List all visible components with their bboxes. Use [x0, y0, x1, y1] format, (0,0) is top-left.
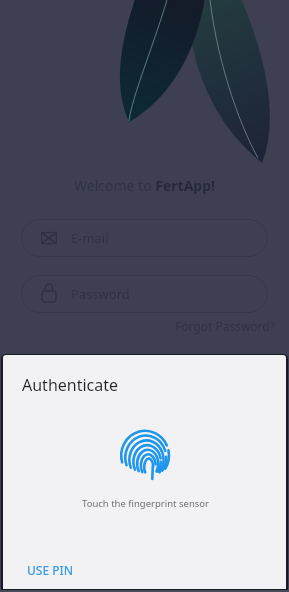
staticText: Authenticate [22, 374, 119, 396]
button[interactable]: Forgot Password? [175, 318, 275, 334]
staticText: Touch the fingerprint sensor [4, 497, 286, 510]
staticText: USE PIN [27, 562, 74, 578]
staticText: Password [71, 285, 130, 303]
other: Fingerprint sensor [119, 433, 173, 487]
staticText: E-mail [71, 229, 109, 247]
staticText: Welcome to FertApp! [0, 176, 289, 195]
button[interactable]: USE PIN [15, 554, 86, 586]
